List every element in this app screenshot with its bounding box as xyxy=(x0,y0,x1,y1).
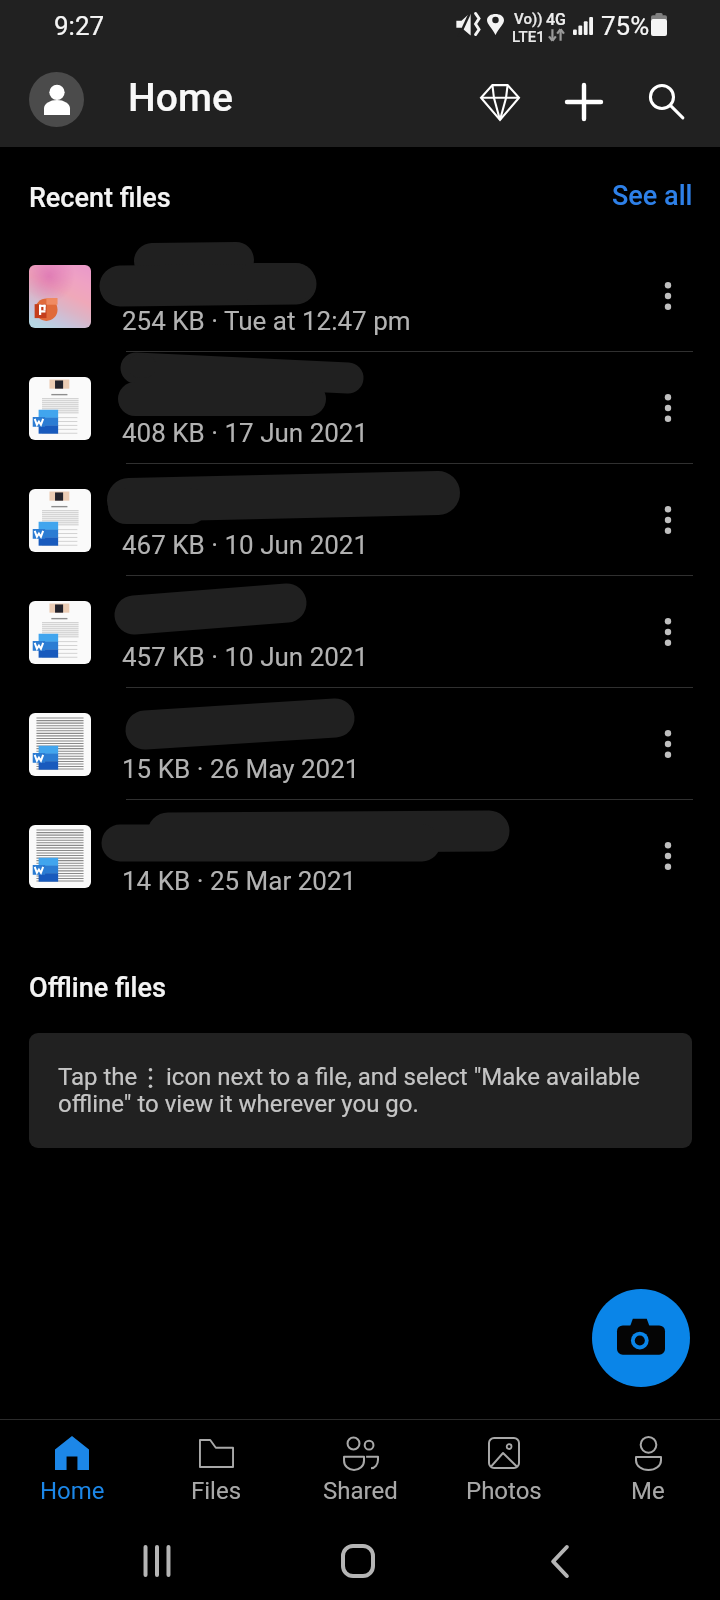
button[interactable]: More options xyxy=(638,266,698,326)
staticText: 9:27 xyxy=(54,11,105,41)
staticText: Home xyxy=(128,75,233,121)
button[interactable]: Photos xyxy=(432,1420,576,1522)
button[interactable]: 457 KB · 10 Jun 2021 xyxy=(0,576,720,688)
staticText: Home xyxy=(40,1477,105,1505)
button[interactable]: Files xyxy=(144,1420,288,1522)
staticText: 254 KB · Tue at 12:47 pm xyxy=(122,306,411,336)
staticText: Vo)) xyxy=(514,10,543,28)
staticText: 75% xyxy=(601,11,650,41)
staticText: 457 KB · 10 Jun 2021 xyxy=(122,642,369,672)
staticText: Recent files xyxy=(29,182,171,214)
staticText: Offline files xyxy=(29,972,166,1004)
button[interactable]: Me xyxy=(576,1420,720,1522)
button[interactable]: 14 KB · 25 Mar 2021 xyxy=(0,800,720,912)
button[interactable]: Premium xyxy=(458,60,542,144)
button[interactable]: Home xyxy=(0,1420,144,1522)
button[interactable]: 254 KB · Tue at 12:47 pm xyxy=(0,240,720,352)
staticText: See all xyxy=(612,180,693,212)
staticText: icon next to a file, and select "Make av… xyxy=(166,1063,641,1091)
staticText: Files xyxy=(191,1477,242,1505)
button[interactable]: 408 KB · 17 Jun 2021 xyxy=(0,352,720,464)
button[interactable]: 467 KB · 10 Jun 2021 xyxy=(0,464,720,576)
staticText: Shared xyxy=(323,1477,398,1505)
button[interactable]: See all xyxy=(600,170,705,222)
button[interactable]: More options xyxy=(638,714,698,774)
staticText: offline" to view it wherever you go. xyxy=(58,1090,419,1118)
button[interactable]: Tap the xyxy=(29,1033,692,1148)
staticText: 467 KB · 10 Jun 2021 xyxy=(122,530,369,560)
staticText: LTE1 xyxy=(512,28,545,46)
button[interactable]: More options xyxy=(638,378,698,438)
button[interactable]: Add xyxy=(542,60,626,144)
staticText: Tap the xyxy=(58,1063,144,1091)
button[interactable]: Home xyxy=(318,1526,398,1596)
staticText: Photos xyxy=(466,1477,542,1505)
button[interactable]: More options xyxy=(638,602,698,662)
staticText: 408 KB · 17 Jun 2021 xyxy=(122,418,369,448)
button[interactable]: More options xyxy=(638,826,698,886)
button[interactable]: Search xyxy=(625,60,709,144)
staticText: 14 KB · 25 Mar 2021 xyxy=(122,866,357,896)
button[interactable]: Scan document xyxy=(592,1289,690,1387)
staticText: 15 KB · 26 May 2021 xyxy=(122,754,360,784)
staticText: Me xyxy=(631,1477,665,1505)
button[interactable]: 15 KB · 26 May 2021 xyxy=(0,688,720,800)
button[interactable]: More options xyxy=(638,490,698,550)
button[interactable]: Account xyxy=(29,72,84,127)
button[interactable]: Recents xyxy=(117,1526,197,1596)
button[interactable]: Shared xyxy=(288,1420,432,1522)
button[interactable]: Back xyxy=(520,1526,600,1596)
staticText: 4G xyxy=(546,10,566,29)
